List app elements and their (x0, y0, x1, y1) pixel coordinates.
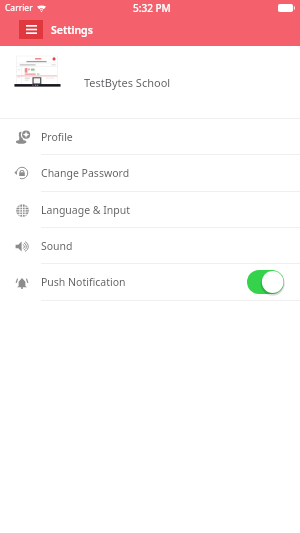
button[interactable]: TestBytes School (0, 46, 300, 118)
staticText: Settings (51, 23, 93, 37)
staticText: Sound (41, 239, 73, 253)
button[interactable]: Sound (0, 228, 300, 263)
button[interactable]: Profile (0, 119, 300, 154)
button[interactable]: Change Password (0, 155, 300, 191)
button[interactable]: Language & Input (0, 192, 300, 227)
button[interactable]: Push notification toggle, on (247, 270, 285, 295)
staticText: TestBytes School (84, 75, 171, 90)
staticText: Language & Input (41, 203, 131, 217)
staticText: Profile (41, 130, 73, 144)
staticText: Carrier (5, 2, 33, 14)
staticText: Change Password (41, 166, 130, 180)
button[interactable]: Push Notification (0, 264, 300, 300)
button[interactable]: Open navigation menu (19, 20, 43, 39)
staticText: Push Notification (41, 275, 126, 289)
staticText: 5:32 PM (133, 1, 171, 15)
